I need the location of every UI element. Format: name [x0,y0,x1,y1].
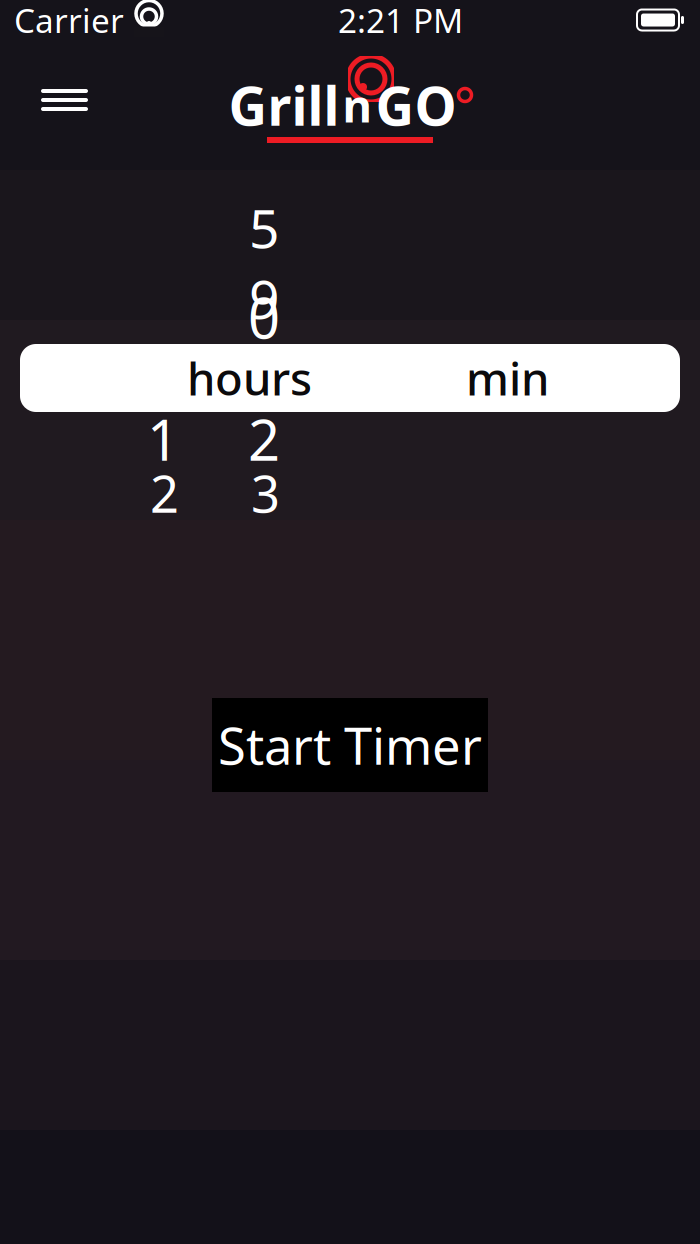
staticText: 2 [248,402,280,476]
staticText: 1 [418,337,453,419]
staticText: 0 [248,280,280,354]
staticText: 1 [147,402,179,476]
staticText: 0 [139,337,174,419]
staticText: n [342,75,371,135]
staticText: 2:21 PM [338,0,463,42]
staticText: Start Timer [218,711,482,779]
staticText: Grill [228,70,339,140]
staticText: min [466,348,549,408]
staticText: 59 [249,192,280,334]
staticText: 2 [150,459,179,527]
staticText: GO [375,70,456,140]
button[interactable]: Duration picker, 0 hours 1 minute [20,344,680,412]
staticText: hours [187,348,312,408]
button[interactable]: Start Timer [212,698,488,792]
staticText: Carrier [14,0,124,42]
button[interactable]: Menu [27,75,102,125]
staticText: 3 [251,459,280,527]
